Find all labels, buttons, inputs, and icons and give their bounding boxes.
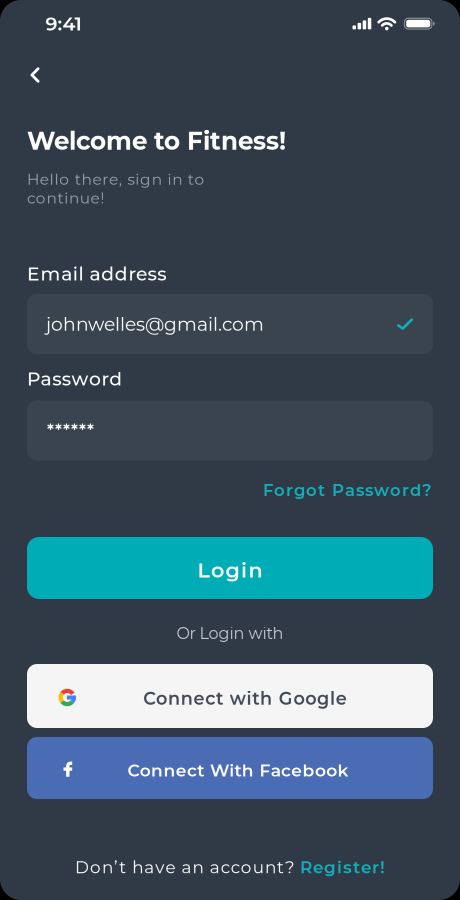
staticText: Connect with Google bbox=[143, 688, 347, 709]
button[interactable]: Back bbox=[13, 53, 57, 97]
staticText: johnwelles@gmail.com bbox=[46, 313, 264, 335]
staticText: Welcome to Fitness! bbox=[27, 126, 286, 156]
button[interactable]: Forgot Password? bbox=[263, 480, 432, 500]
staticText: Login bbox=[197, 558, 262, 583]
staticText: Forgot Password? bbox=[263, 480, 432, 500]
staticText: Register! bbox=[300, 857, 385, 877]
button[interactable]: Connect with Google bbox=[27, 664, 433, 728]
staticText: Hello there, sign in to continue! bbox=[27, 170, 205, 207]
staticText: 9:41 bbox=[45, 12, 81, 35]
button[interactable]: Connect With Facebook bbox=[27, 737, 433, 799]
staticText: Or Login with bbox=[176, 623, 283, 643]
button[interactable]: Register! bbox=[300, 857, 385, 877]
staticText: Connect With Facebook bbox=[127, 760, 348, 781]
staticText: Don’t have an account? bbox=[75, 857, 300, 877]
button[interactable]: Login bbox=[27, 537, 433, 599]
staticText: Password bbox=[27, 367, 122, 390]
staticText: Email address bbox=[27, 262, 166, 285]
staticText: ****** bbox=[47, 419, 94, 440]
